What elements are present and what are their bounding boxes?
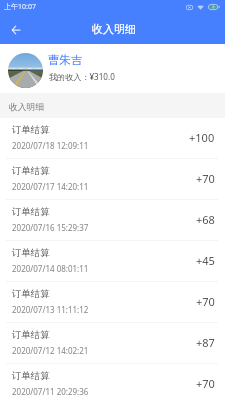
staticText: +70 [196, 171, 215, 186]
button[interactable]: 曹朱吉 [0, 44, 225, 93]
staticText: +70 [196, 294, 215, 309]
button[interactable]: 订单结算 [0, 200, 225, 240]
staticText: 订单结算 [12, 165, 50, 177]
button[interactable]: 订单结算 [0, 364, 225, 400]
staticText: +70 [196, 376, 215, 391]
staticText: 收入明细 [92, 22, 136, 36]
staticText: 2020/07/11 20:29:36 [12, 386, 89, 397]
button[interactable]: 订单结算 [0, 118, 225, 158]
staticText: 订单结算 [12, 247, 50, 259]
staticText: 订单结算 [12, 206, 50, 218]
staticText: +100 [189, 130, 215, 145]
staticText: +45 [196, 253, 215, 268]
button[interactable]: 订单结算 [0, 282, 225, 322]
staticText: +68 [196, 212, 215, 227]
button[interactable]: 订单结算 [0, 241, 225, 281]
staticText: 2020/07/17 14:20:11 [12, 181, 89, 192]
staticText: 2020/07/18 12:09:11 [12, 140, 89, 151]
staticText: 2020/07/12 14:02:21 [12, 345, 89, 356]
staticText: 曹朱吉 [48, 53, 83, 67]
staticText: 订单结算 [12, 329, 50, 341]
staticText: 收入明细 [9, 102, 45, 113]
staticText: +87 [196, 335, 215, 350]
button[interactable]: Back [0, 14, 28, 44]
staticText: 订单结算 [12, 288, 50, 300]
button[interactable]: 订单结算 [0, 159, 225, 199]
staticText: 我的收入：¥310.0 [49, 71, 115, 82]
staticText: 2020/07/13 11:11:12 [12, 304, 89, 315]
staticText: 订单结算 [12, 124, 50, 136]
staticText: 订单结算 [12, 370, 50, 382]
staticText: 2020/07/14 08:01:11 [12, 263, 89, 274]
button[interactable]: 订单结算 [0, 323, 225, 363]
staticText: 上午10:07 [4, 2, 36, 12]
staticText: 2020/07/16 15:29:37 [12, 222, 89, 233]
